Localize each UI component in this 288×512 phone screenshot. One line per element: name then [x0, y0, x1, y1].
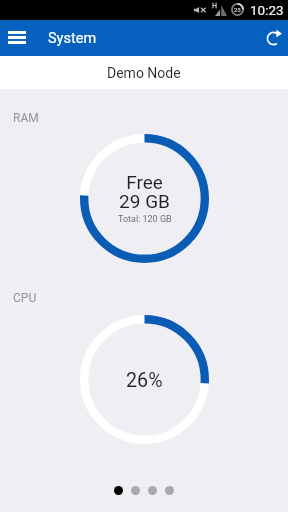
- staticText: H: [212, 2, 217, 10]
- staticText: 10:23: [250, 2, 284, 18]
- staticText: Free 29 GB: [119, 171, 170, 213]
- staticText: Total: 120 GB: [118, 214, 172, 225]
- staticText: 25: [234, 6, 241, 13]
- button[interactable]: Page 1: [114, 486, 123, 495]
- button[interactable]: Refresh: [258, 20, 288, 56]
- staticText: 26%: [126, 369, 163, 392]
- staticText: System: [48, 30, 97, 47]
- staticText: CPU: [13, 291, 37, 305]
- button[interactable]: Page 3: [148, 486, 157, 495]
- button[interactable]: Page 2: [131, 486, 140, 495]
- staticText: Demo Node: [107, 65, 181, 81]
- button[interactable]: Demo Node: [0, 56, 288, 89]
- staticText: RAM: [13, 111, 39, 125]
- button[interactable]: Menu: [0, 19, 33, 55]
- button[interactable]: Page 4: [165, 486, 174, 495]
